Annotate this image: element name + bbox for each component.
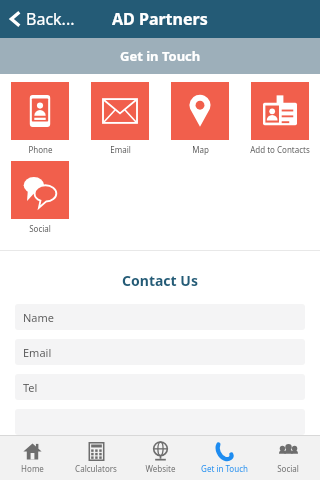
button[interactable]: Email: [15, 339, 305, 365]
button[interactable]: Calculators: [64, 436, 128, 480]
staticText: Tel: [23, 380, 38, 395]
button[interactable]: Map: [160, 82, 240, 155]
staticText: Back...: [26, 8, 75, 30]
button[interactable]: Tel: [15, 374, 305, 400]
staticText: Get in Touch: [120, 47, 201, 65]
staticText: Add to Contacts: [250, 144, 310, 155]
staticText: Website: [145, 463, 176, 474]
staticText: Home: [21, 463, 44, 474]
button[interactable]: Add to Contacts: [240, 82, 320, 155]
button[interactable]: Back...: [6, 4, 79, 34]
staticText: Email: [110, 144, 131, 155]
button[interactable]: Social: [0, 161, 80, 234]
button[interactable]: Website: [128, 436, 192, 480]
button[interactable]: Phone: [0, 82, 80, 155]
button[interactable]: Get in Touch: [192, 436, 256, 480]
staticText: Calculators: [75, 463, 117, 474]
button[interactable]: Social: [256, 436, 320, 480]
staticText: Phone: [28, 144, 53, 155]
staticText: Get in Touch: [201, 463, 248, 474]
staticText: Social: [277, 463, 299, 474]
staticText: Contact Us: [0, 271, 320, 290]
button[interactable]: Home: [0, 436, 64, 480]
button[interactable]: Name: [15, 304, 305, 330]
staticText: Map: [192, 144, 209, 155]
staticText: Name: [23, 310, 55, 325]
staticText: Email: [23, 345, 52, 360]
staticText: Social: [29, 223, 51, 234]
staticText: AD Partners: [112, 8, 208, 30]
button[interactable]: Email: [80, 82, 160, 155]
